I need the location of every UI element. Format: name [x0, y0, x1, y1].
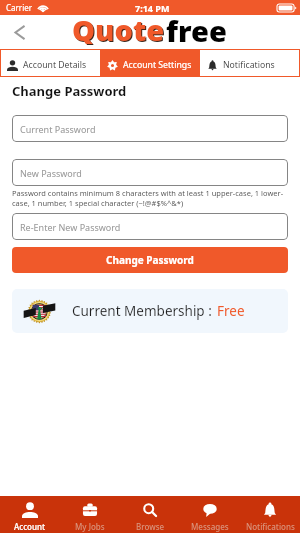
staticText: Re-Enter New Password [20, 221, 121, 233]
button[interactable]: Notifications [240, 496, 300, 533]
staticText: Browse [136, 521, 165, 532]
button[interactable]: Back [6, 18, 34, 46]
button[interactable]: Re-Enter New Password [12, 213, 288, 240]
staticText: Notifications [246, 521, 295, 532]
staticText: Messages [191, 521, 229, 532]
staticText: My Jobs [75, 521, 105, 532]
staticText: Password contains minimum 8 characters w… [12, 188, 288, 208]
staticText: Notifications [223, 59, 275, 71]
button[interactable]: Notifications [200, 49, 300, 77]
staticText: Change Password [12, 82, 127, 100]
button[interactable]: Account Details [0, 49, 100, 77]
button[interactable]: Current Password [12, 115, 288, 142]
button[interactable]: Account [0, 496, 60, 533]
staticText: Free [217, 302, 245, 320]
staticText: Account [14, 521, 46, 532]
button[interactable]: Messages [180, 496, 240, 533]
button[interactable]: Browse [120, 496, 180, 533]
button[interactable]: Current Membership : [12, 289, 288, 333]
staticText: Current Password [20, 123, 96, 135]
button[interactable]: New Password [12, 159, 288, 186]
staticText: Change Password [106, 253, 194, 267]
button[interactable]: Account Settings [100, 49, 200, 77]
staticText: Account Details [23, 59, 87, 71]
staticText: Quote [73, 11, 166, 45]
staticText: free [166, 11, 227, 45]
staticText: New Password [20, 167, 82, 179]
staticText: 7:14 PM [135, 2, 170, 14]
button[interactable]: My Jobs [60, 496, 120, 533]
staticText: Quote [72, 10, 165, 44]
button[interactable]: Change Password [12, 247, 288, 273]
staticText: Carrier [6, 2, 33, 13]
staticText: Current Membership : [72, 302, 212, 320]
staticText: Account Settings [123, 59, 192, 71]
